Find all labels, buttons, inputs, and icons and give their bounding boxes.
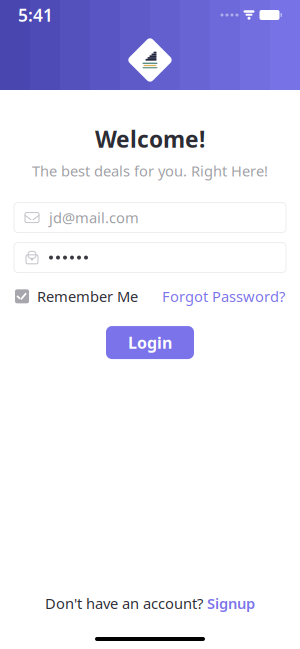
staticText: 5:41 <box>18 3 53 26</box>
staticText: Welcome! <box>95 124 205 154</box>
button[interactable]: Don't have an account? <box>45 593 255 613</box>
staticText: jd@mail.com <box>49 208 139 227</box>
button[interactable]: Forgot Password? <box>162 287 285 306</box>
staticText: Remember Me <box>37 287 138 306</box>
button[interactable]: Login <box>106 326 194 359</box>
button[interactable]: Remember Me <box>15 287 138 306</box>
staticText: Don't have an account? <box>45 593 203 613</box>
staticText: The best deals for you. Right Here! <box>32 161 268 181</box>
staticText: Login <box>128 332 172 353</box>
staticText: Signup <box>207 593 255 613</box>
staticText: Forgot Password? <box>162 287 285 306</box>
